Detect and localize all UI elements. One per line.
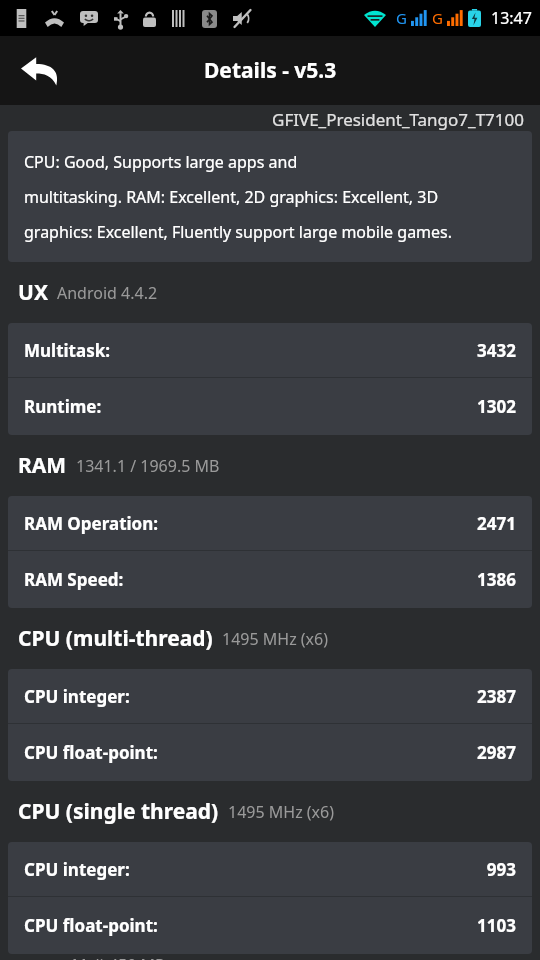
staticText: 2987 [158, 741, 516, 764]
staticText: G [432, 8, 443, 28]
button[interactable]: CPU float-point: [8, 897, 532, 954]
staticText: UX [18, 278, 48, 307]
staticText: 2471 [159, 512, 516, 535]
staticText: 993 [130, 858, 516, 881]
staticText: GFIVE_President_Tango7_T7100 [272, 108, 524, 131]
staticText: CPU integer: [24, 858, 130, 881]
staticText: Multitask: [24, 339, 111, 362]
button[interactable]: CPU integer: [8, 842, 532, 896]
staticText: Details - v5.3 [204, 56, 337, 85]
staticText: CPU float-point: [24, 741, 158, 764]
staticText: 1103 [158, 914, 516, 937]
button[interactable]: Back [8, 41, 72, 101]
staticText: 3432 [111, 339, 516, 362]
staticText: CPU: Good, Supports large apps and [24, 151, 298, 173]
staticText: CPU float-point: [24, 914, 158, 937]
staticText: 13:47 [491, 7, 532, 29]
staticText: Mali-450 MP [72, 954, 165, 960]
staticText: 2387 [130, 685, 516, 708]
staticText: graphics: Excellent, Fluently support la… [24, 221, 453, 243]
staticText: 1495 MHz (x6) [228, 801, 335, 823]
staticText: RAM Operation: [24, 512, 159, 535]
button[interactable]: RAM Operation: [8, 496, 532, 550]
staticText: RAM [18, 451, 67, 480]
staticText: multitasking. RAM: Excellent, 2D graphic… [24, 186, 439, 208]
button[interactable]: Runtime: [8, 378, 532, 435]
staticText: CPU (single thread) [18, 797, 219, 826]
staticText: 1386 [124, 568, 516, 591]
staticText: 1341.1 / 1969.5 MB [76, 455, 220, 477]
staticText: 1302 [102, 395, 516, 418]
button[interactable]: RAM Speed: [8, 551, 532, 608]
button[interactable]: CPU float-point: [8, 724, 532, 781]
staticText: Runtime: [24, 395, 102, 418]
button[interactable]: CPU: Good, Supports large apps and [8, 131, 532, 262]
button[interactable]: Multitask: [8, 323, 532, 377]
staticText: CPU integer: [24, 685, 130, 708]
staticText: 1495 MHz (x6) [222, 628, 329, 650]
staticText: RAM Speed: [24, 568, 124, 591]
staticText: Android 4.4.2 [57, 282, 158, 304]
staticText: G [396, 8, 407, 28]
staticText: CPU (multi-thread) [18, 624, 213, 653]
button[interactable]: CPU integer: [8, 669, 532, 723]
